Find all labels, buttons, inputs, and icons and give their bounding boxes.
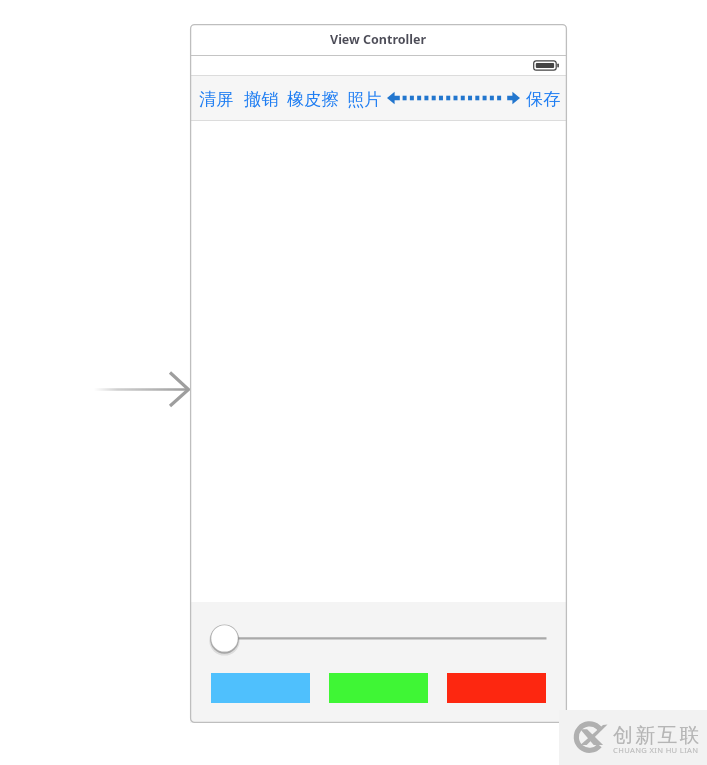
button[interactable]: 保存 bbox=[526, 76, 561, 120]
button[interactable]: Brush size slider bbox=[190, 602, 567, 660]
staticText: 创新互联 bbox=[613, 723, 702, 748]
button[interactable]: 橡皮擦 bbox=[287, 76, 339, 120]
staticText: 清屏 bbox=[199, 88, 234, 110]
button[interactable]: 撤销 bbox=[244, 76, 279, 120]
staticText: 撤销 bbox=[244, 88, 279, 110]
staticText: 照片 bbox=[347, 88, 382, 110]
button[interactable]: 清屏 bbox=[199, 76, 234, 120]
other: Flexible space bbox=[387, 87, 520, 109]
staticText: 保存 bbox=[526, 88, 561, 110]
staticText: 橡皮擦 bbox=[287, 88, 339, 110]
button[interactable]: 照片 bbox=[347, 76, 382, 120]
staticText: CHUANG XIN HU LIAN bbox=[613, 745, 699, 755]
staticText: View Controller bbox=[330, 31, 427, 48]
